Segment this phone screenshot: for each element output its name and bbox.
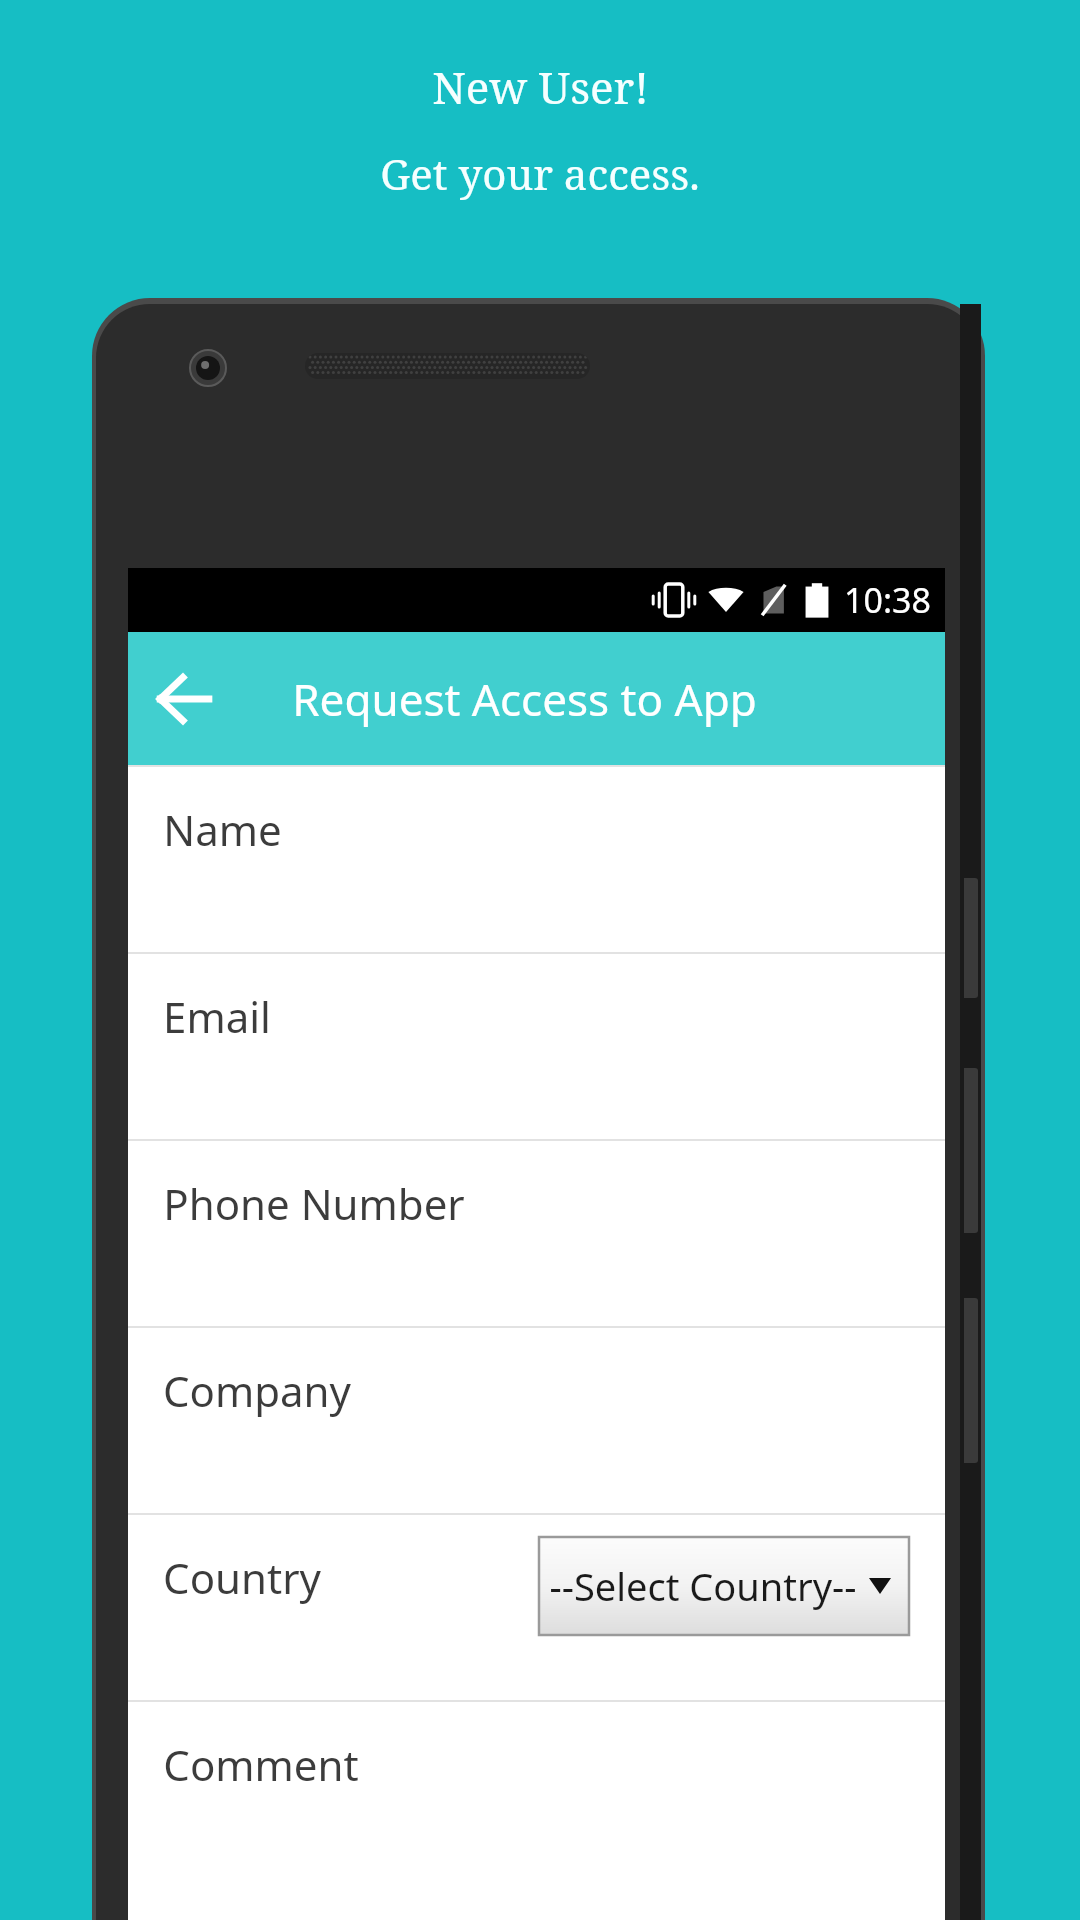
- staticText: Country: [163, 1549, 321, 1606]
- staticText: Get your access.: [380, 145, 700, 202]
- button[interactable]: Company: [128, 1328, 945, 1513]
- staticText: Request Access to App: [292, 669, 757, 729]
- staticText: Name: [163, 801, 282, 858]
- button[interactable]: Comment: [128, 1702, 945, 1920]
- button[interactable]: --Select Country--: [539, 1537, 909, 1635]
- button[interactable]: Email: [128, 954, 945, 1139]
- staticText: Phone Number: [163, 1175, 465, 1232]
- staticText: New User!: [432, 57, 649, 117]
- button[interactable]: Phone Number: [128, 1141, 945, 1326]
- staticText: 10:38: [844, 577, 931, 623]
- staticText: --Select Country--: [549, 1560, 857, 1612]
- staticText: Comment: [163, 1736, 359, 1793]
- staticText: Company: [163, 1362, 351, 1419]
- button[interactable]: Back: [136, 651, 232, 747]
- staticText: Email: [163, 988, 271, 1045]
- button[interactable]: Name: [128, 767, 945, 952]
